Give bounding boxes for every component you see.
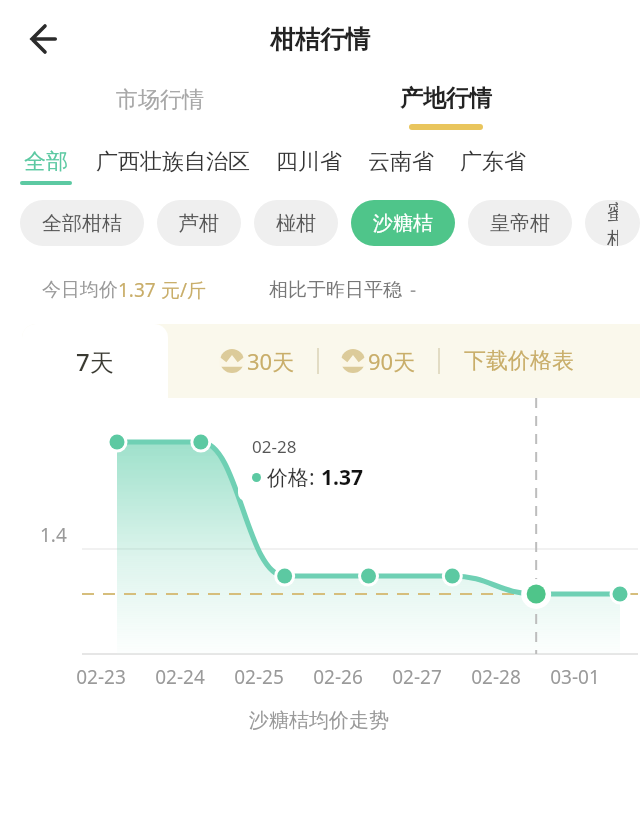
- staticText: 90天: [368, 346, 416, 376]
- button[interactable]: 全部: [20, 148, 72, 185]
- staticText: 7天: [76, 345, 114, 378]
- staticText: 云南省: [368, 148, 434, 176]
- staticText: 四川省: [276, 148, 342, 176]
- button[interactable]: 蜜柑: [585, 200, 640, 246]
- button[interactable]: 广西壮族自治区: [94, 148, 252, 181]
- staticText: 02-24: [155, 664, 205, 690]
- staticText: 02-28: [471, 664, 521, 690]
- staticText: 03-01: [550, 664, 600, 690]
- staticText: 相比于昨日平稳: [269, 278, 402, 302]
- staticText: 1.37: [321, 463, 363, 492]
- staticText: 02-27: [392, 664, 442, 690]
- staticText: 沙糖桔均价走势: [249, 708, 389, 733]
- button[interactable]: 市场行情: [112, 80, 208, 120]
- button[interactable]: 云南省: [366, 148, 436, 181]
- button[interactable]: 30天: [220, 340, 295, 382]
- staticText: 全部: [24, 148, 68, 176]
- staticText: 今日均价: [42, 278, 118, 302]
- staticText: 1.4: [40, 522, 67, 548]
- staticText: 市场行情: [116, 86, 204, 114]
- staticText: 柑桔行情: [270, 24, 370, 55]
- staticText: 蜜柑: [607, 200, 618, 246]
- staticText: -: [410, 277, 417, 303]
- staticText: 02-25: [234, 664, 284, 690]
- staticText: 02-23: [76, 664, 126, 690]
- button[interactable]: 四川省: [274, 148, 344, 181]
- staticText: 椪柑: [276, 211, 316, 236]
- staticText: 皇帝柑: [490, 211, 550, 236]
- staticText: 广东省: [460, 148, 526, 176]
- staticText: 全部柑桔: [42, 211, 122, 236]
- staticText: 产地行情: [400, 84, 492, 113]
- button[interactable]: 产地行情: [396, 78, 496, 130]
- staticText: 下载价格表: [464, 347, 574, 375]
- staticText: 02-28: [252, 435, 297, 458]
- button[interactable]: 皇帝柑: [468, 200, 572, 246]
- staticText: 广西壮族自治区: [96, 148, 250, 176]
- button[interactable]: 全部柑桔: [20, 200, 144, 246]
- staticText: 价格:: [267, 463, 321, 492]
- staticText: 沙糖桔: [373, 211, 433, 236]
- staticText: 1.37: [118, 277, 156, 303]
- button[interactable]: 广东省: [458, 148, 528, 181]
- staticText: 元/斤: [156, 277, 207, 303]
- button[interactable]: Back: [22, 14, 72, 64]
- button[interactable]: 芦柑: [157, 200, 241, 246]
- staticText: 02-26: [313, 664, 363, 690]
- button[interactable]: 7天: [22, 324, 168, 398]
- button[interactable]: 下载价格表: [460, 343, 578, 379]
- button[interactable]: 椪柑: [254, 200, 338, 246]
- staticText: 30天: [247, 346, 295, 376]
- button[interactable]: 90天: [341, 340, 416, 382]
- staticText: 芦柑: [179, 211, 219, 236]
- button[interactable]: 沙糖桔: [351, 200, 455, 246]
